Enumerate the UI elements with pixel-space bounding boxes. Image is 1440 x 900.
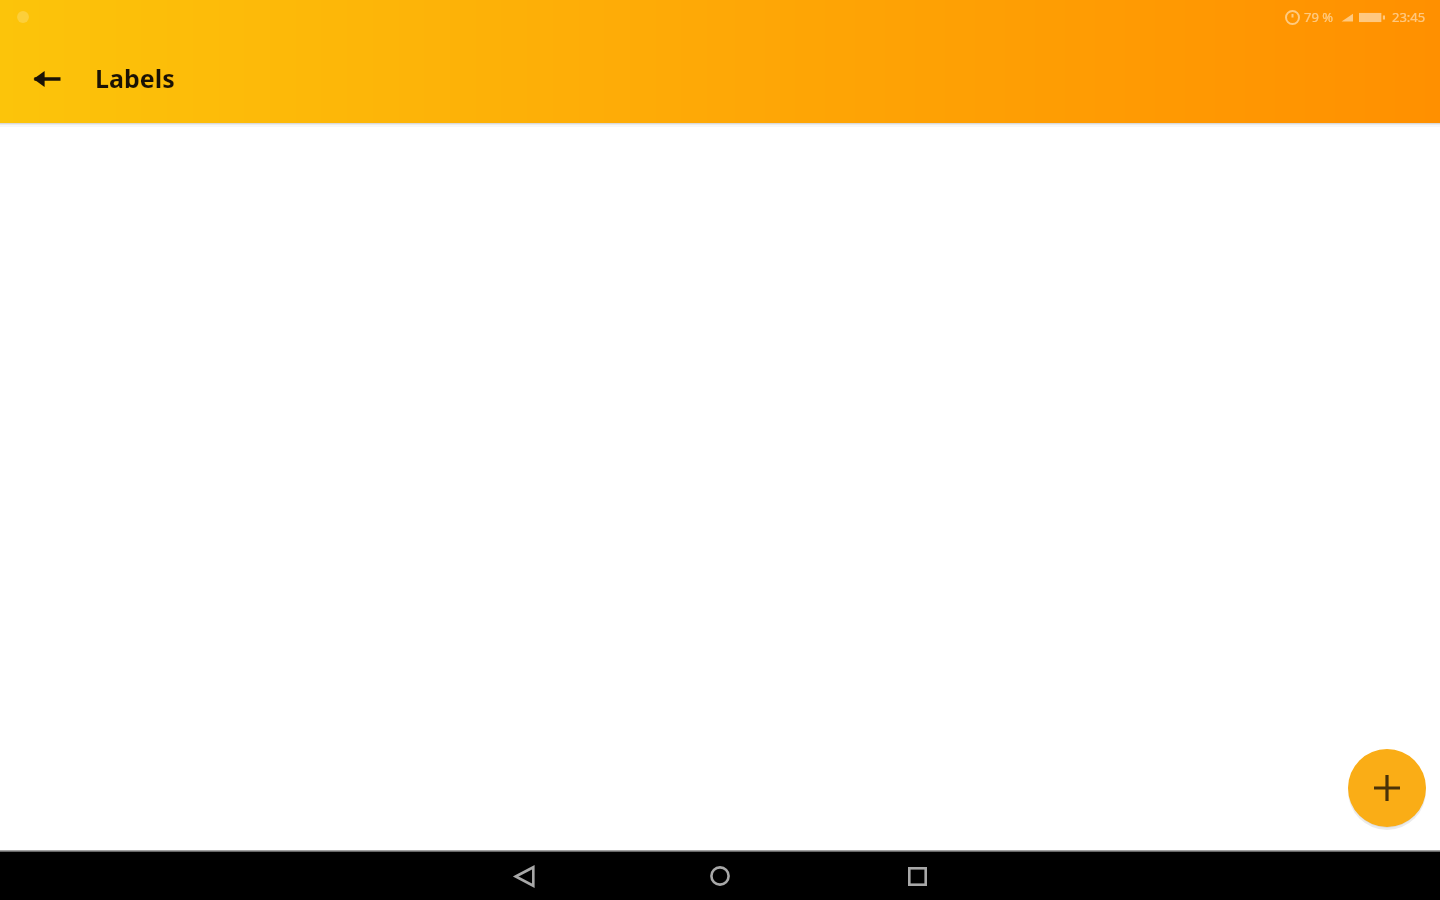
button[interactable]: Navigate up (15, 47, 79, 111)
staticText: 79 % (1304, 8, 1334, 26)
button[interactable]: Back (492, 852, 556, 900)
button[interactable]: Add label (1348, 749, 1426, 827)
button[interactable]: Home (688, 852, 752, 900)
staticText: Labels (95, 61, 175, 95)
staticText: 23:45 (1392, 8, 1426, 26)
button[interactable]: Recent apps (885, 852, 949, 900)
